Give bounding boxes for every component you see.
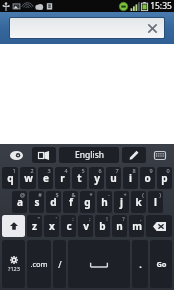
staticText: ?123 [8,265,20,272]
button[interactable]: English [59,147,119,163]
button[interactable]: Go [150,240,172,288]
staticText: d [50,195,57,209]
staticText: b [99,219,106,233]
button[interactable]: l [148,191,163,213]
staticText: $ [55,191,59,198]
button[interactable]: . [132,240,148,288]
staticText: t [77,171,82,185]
staticText: ( [142,191,144,198]
staticText: r [60,171,65,185]
staticText: 7 [115,167,119,174]
staticText: y [94,171,100,185]
button[interactable]: v [78,215,93,237]
button[interactable]: b [95,215,110,237]
staticText: - [108,191,110,198]
staticText: g [84,195,91,209]
button[interactable]: w [20,167,36,189]
staticText: ' [55,215,57,222]
button[interactable]: Clear search [10,18,164,38]
staticText: 1 [12,167,16,174]
staticText: English [75,149,104,161]
staticText: + [123,191,127,198]
button[interactable]: m [129,215,144,237]
button[interactable]: n [112,215,127,237]
button[interactable]: Emoticons [3,144,29,166]
staticText: ; [89,215,91,222]
button[interactable]: t [72,167,87,189]
button[interactable]: ?123 [2,240,25,288]
staticText: : [72,215,74,222]
button[interactable]: r [55,167,70,189]
staticText: w [24,171,33,185]
button[interactable]: .com [27,240,51,288]
button[interactable]: g [80,191,95,213]
staticText: ! [106,215,108,222]
staticText: 8 [132,167,136,174]
button[interactable]: / [53,240,66,288]
staticText: v [83,219,89,233]
button[interactable]: i [123,167,138,189]
staticText: c [66,219,72,233]
staticText: u [110,171,117,185]
staticText: 3 [47,167,51,174]
button[interactable]: Hide keyboard [149,144,171,166]
button[interactable] [2,215,25,237]
button[interactable]: p [157,167,172,189]
staticText: ) [159,191,161,198]
button[interactable]: c [61,215,76,237]
staticText: i [129,171,132,185]
button[interactable]: q [2,167,18,189]
button[interactable]: z [27,215,42,237]
button[interactable]: u [106,167,121,189]
staticText: f [69,195,73,209]
staticText: l [154,195,157,209]
button[interactable]: Voice input [32,147,56,163]
staticText: / [58,258,62,270]
staticText: " [37,215,40,222]
button[interactable]: k [131,191,146,213]
staticText: ? [122,215,125,222]
staticText: q [7,171,14,185]
staticText: 0 [166,167,170,174]
button[interactable]: s [29,191,44,213]
staticText: Go [156,259,167,269]
staticText: p [161,171,168,185]
staticText: n [116,219,123,233]
staticText: @ [20,191,25,198]
staticText: e [43,171,49,185]
staticText: & [71,191,76,198]
staticText: 4 [64,167,68,174]
button[interactable]: f [63,191,78,213]
staticText: k [135,195,142,209]
staticText: m [132,219,142,233]
staticText: 5 [81,167,85,174]
staticText: a [17,195,23,209]
button[interactable]: h [97,191,112,213]
staticText: .com [30,259,48,269]
button[interactable]: y [89,167,104,189]
staticText: o [144,171,151,185]
staticText: 9 [149,167,153,174]
staticText: . [139,258,142,270]
staticText: x [49,219,55,233]
button[interactable]: Clear search [143,19,161,37]
button[interactable]: e [38,167,53,189]
button[interactable]: j [114,191,129,213]
staticText: z [32,219,37,233]
staticText: 2 [30,167,34,174]
button[interactable]: d [46,191,61,213]
button[interactable] [146,215,172,237]
staticText: # [38,191,42,198]
staticText: h [101,195,108,209]
staticText: j [120,195,123,209]
staticText: 15:35 [150,0,172,12]
staticText: 6 [98,167,102,174]
button[interactable]: o [140,167,155,189]
button[interactable]: a [12,191,27,213]
button[interactable]: Handwriting [122,147,146,163]
button[interactable] [68,240,130,288]
staticText: * [89,191,93,198]
button[interactable]: x [44,215,59,237]
staticText: s [34,195,40,209]
staticText: , [140,215,142,222]
